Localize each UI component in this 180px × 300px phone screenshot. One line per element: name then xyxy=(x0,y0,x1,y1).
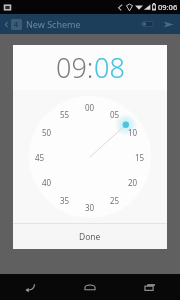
staticText: 00 xyxy=(85,102,95,113)
staticText: 25 xyxy=(110,195,120,206)
button[interactable]: Back xyxy=(0,274,60,300)
staticText: 09:06 xyxy=(158,2,178,12)
button[interactable]: Done xyxy=(13,224,167,249)
staticText: 20 xyxy=(128,177,138,188)
staticText: 35 xyxy=(60,195,70,206)
staticText: 45 xyxy=(35,152,45,163)
staticText: 40 xyxy=(42,177,52,188)
staticText: 15 xyxy=(135,152,145,163)
staticText: 10 xyxy=(128,127,138,138)
button[interactable]: Home xyxy=(60,274,120,300)
staticText: 4 xyxy=(14,20,19,30)
staticText: 08 xyxy=(94,49,125,86)
staticText: 09: xyxy=(56,49,94,86)
staticText: Done xyxy=(79,231,101,243)
staticText: 50 xyxy=(42,127,52,138)
staticText: 30 xyxy=(85,202,95,213)
button[interactable]: Send xyxy=(160,16,176,32)
button[interactable]: Enable scheme xyxy=(138,17,157,31)
button[interactable]: Navigate up xyxy=(2,20,11,29)
staticText: 55 xyxy=(60,109,70,120)
staticText: New Scheme xyxy=(26,18,81,30)
staticText: 05 xyxy=(110,109,120,120)
button[interactable]: Recent apps xyxy=(120,274,180,300)
